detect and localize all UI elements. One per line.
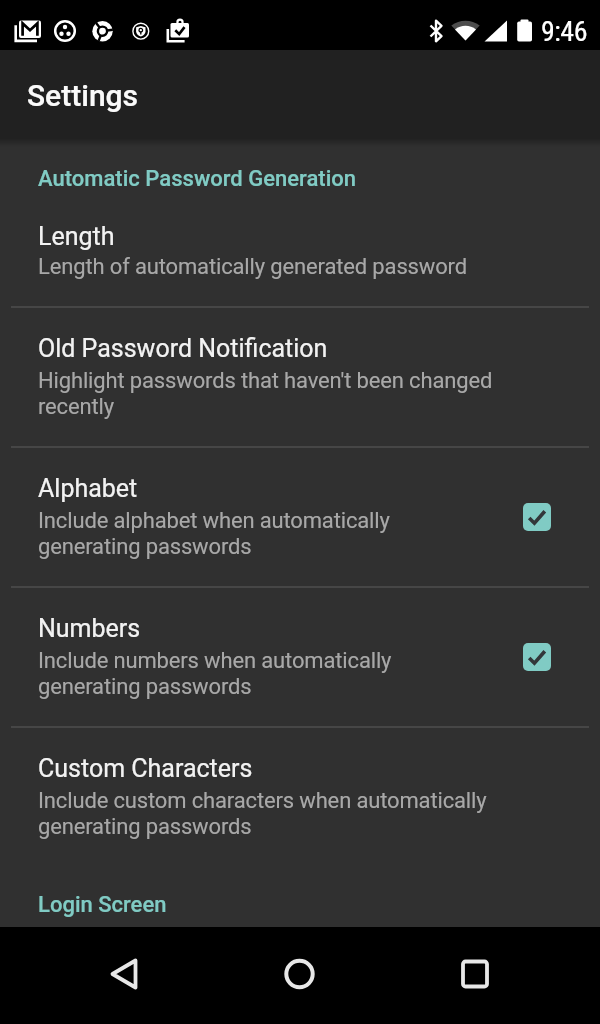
staticText: Highlight passwords that haven't been ch… bbox=[38, 368, 493, 394]
staticText: Settings bbox=[27, 78, 139, 113]
button[interactable]: Length bbox=[0, 196, 600, 306]
staticText: 9:46 bbox=[541, 15, 588, 48]
button[interactable] bbox=[265, 940, 335, 1010]
staticText: Alphabet bbox=[38, 474, 138, 503]
button[interactable]: Alphabet bbox=[0, 447, 600, 586]
staticText: Numbers bbox=[38, 614, 141, 643]
button[interactable] bbox=[523, 503, 551, 531]
button[interactable]: Numbers bbox=[0, 587, 600, 726]
staticText: generating passwords bbox=[38, 674, 252, 700]
staticText: Length bbox=[38, 222, 115, 251]
button[interactable]: Old Password Notification bbox=[0, 307, 600, 446]
staticText: generating passwords bbox=[38, 534, 252, 560]
staticText: Login Screen bbox=[38, 892, 167, 918]
staticText: Include custom characters when automatic… bbox=[38, 788, 487, 814]
staticText: Include alphabet when automatically bbox=[38, 508, 390, 534]
staticText: Include numbers when automatically bbox=[38, 648, 392, 674]
staticText: Old Password Notification bbox=[38, 334, 328, 363]
staticText: Custom Characters bbox=[38, 754, 253, 783]
button[interactable] bbox=[523, 643, 551, 671]
staticText: generating passwords bbox=[38, 814, 252, 840]
staticText: recently bbox=[38, 394, 115, 420]
staticText: Length of automatically generated passwo… bbox=[38, 254, 467, 280]
button[interactable] bbox=[90, 940, 160, 1010]
staticText: Automatic Password Generation bbox=[38, 166, 357, 192]
button[interactable] bbox=[440, 940, 510, 1010]
button[interactable]: Custom Characters bbox=[0, 727, 600, 860]
